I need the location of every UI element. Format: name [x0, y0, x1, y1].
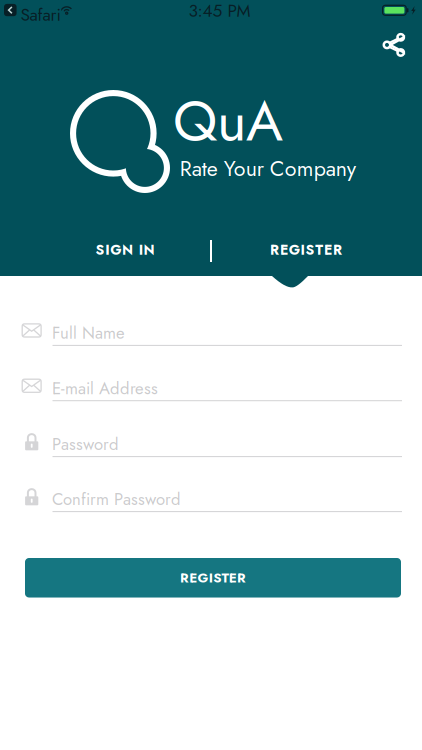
staticText: SIGN IN [95, 240, 155, 260]
staticText: Safari [20, 2, 61, 27]
button[interactable]: REGISTER [235, 232, 377, 268]
staticText: E-mail Address [52, 376, 158, 400]
staticText: Confirm Password [52, 487, 181, 511]
button[interactable]: Share [373, 24, 415, 66]
staticText: REGISTER [180, 568, 246, 587]
staticText: 3:45 PM [188, 0, 250, 23]
staticText: QuA [173, 80, 283, 161]
staticText: Rate Your Company [180, 153, 356, 184]
button[interactable]: REGISTER [25, 558, 401, 597]
staticText: REGISTER [270, 240, 342, 260]
button[interactable]: Full Name [21, 318, 402, 348]
button[interactable]: E-mail Address [21, 373, 402, 403]
button[interactable]: SIGN IN [59, 232, 191, 268]
button[interactable]: Confirm Password [21, 484, 402, 514]
staticText: Full Name [52, 321, 125, 345]
button[interactable]: Password [21, 429, 402, 459]
staticText: Password [52, 432, 119, 456]
